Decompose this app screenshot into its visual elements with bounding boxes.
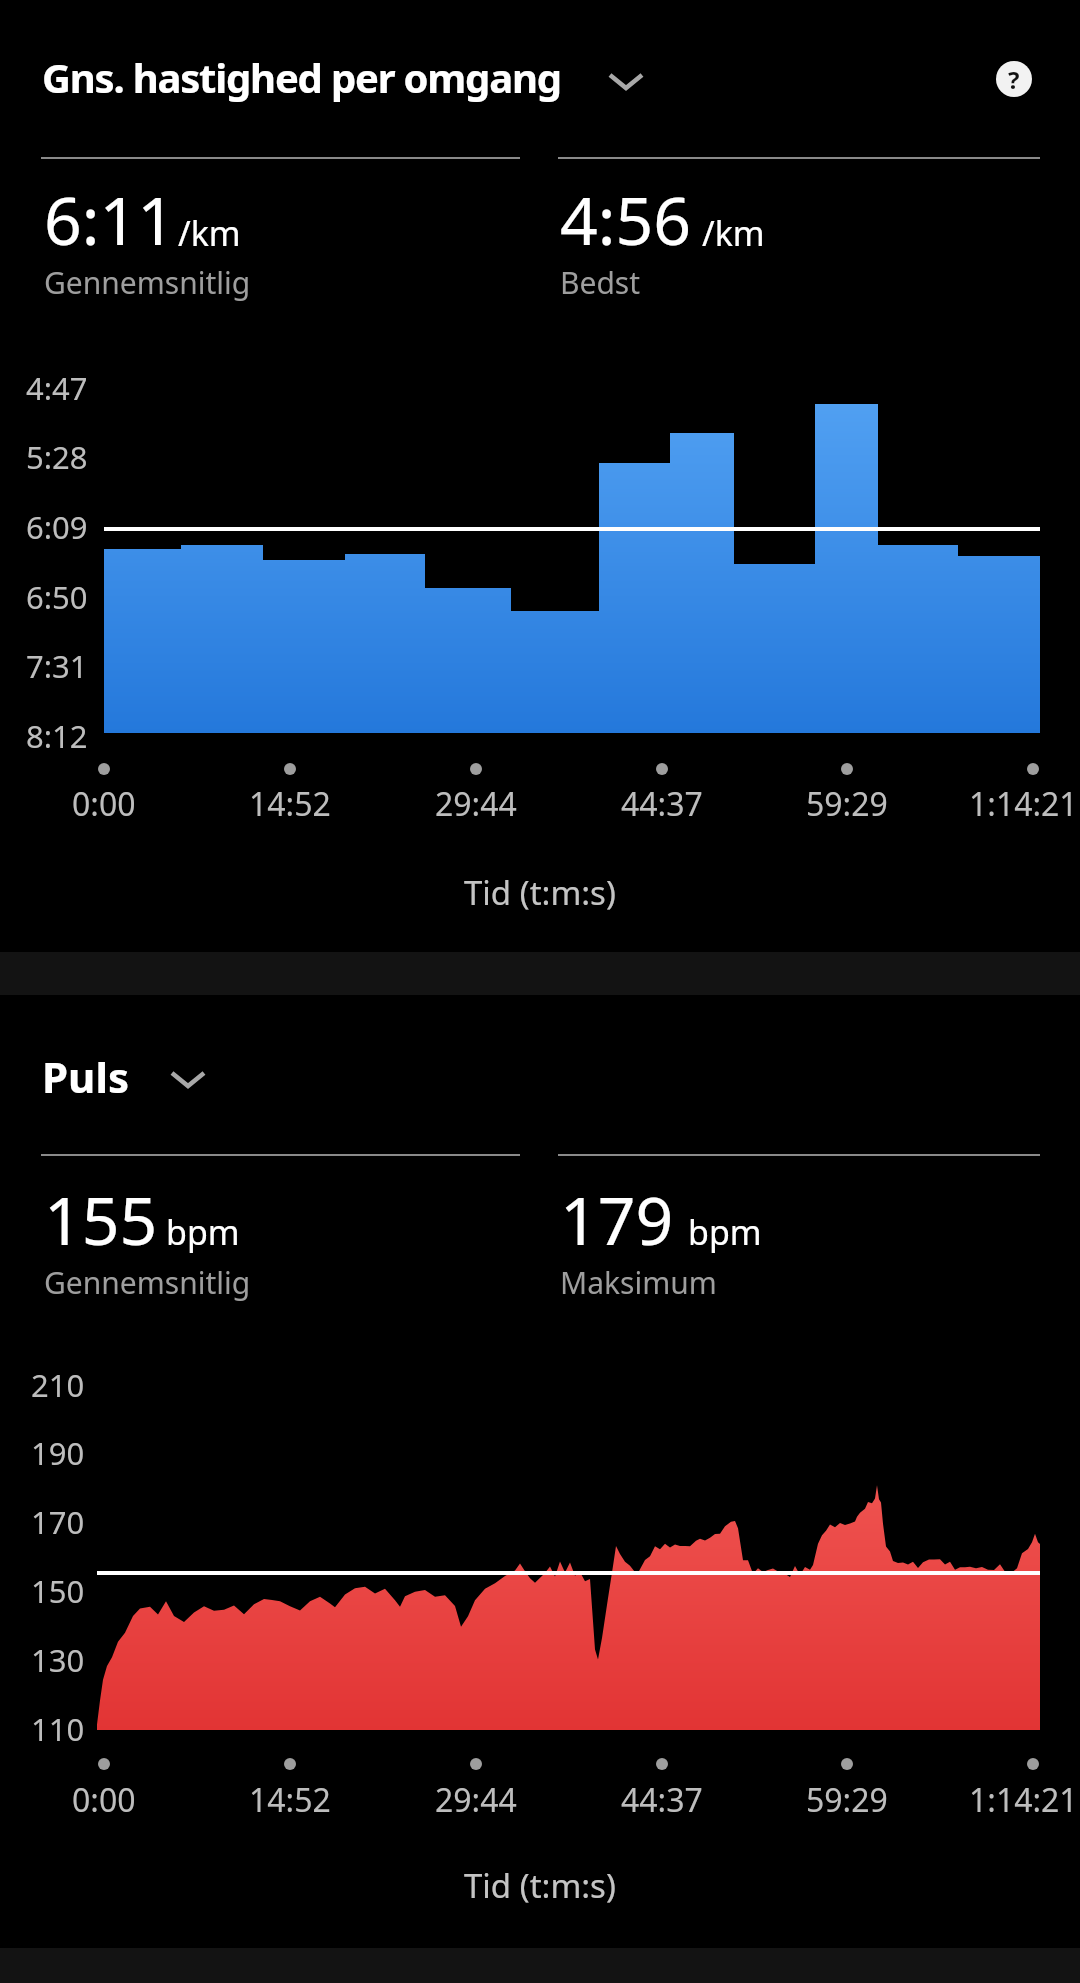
- staticText: Gennemsnitlig: [44, 1262, 251, 1303]
- staticText: Gns. hastighed per omgang: [42, 50, 561, 104]
- staticText: 0:00: [72, 782, 136, 826]
- staticText: 29:44: [435, 1778, 517, 1822]
- staticText: Maksimum: [560, 1262, 717, 1303]
- staticText: Gennemsnitlig: [44, 262, 251, 303]
- staticText: 0:00: [72, 1778, 136, 1822]
- button[interactable]: Puls: [42, 1048, 129, 1105]
- staticText: 6:50: [26, 576, 88, 618]
- staticText: 110: [31, 1708, 85, 1750]
- staticText: 29:44: [435, 782, 517, 826]
- staticText: ?: [1008, 63, 1020, 96]
- staticText: /km: [702, 210, 765, 256]
- staticText: bpm: [166, 1209, 240, 1255]
- staticText: Bedst: [560, 262, 641, 303]
- staticText: 179: [560, 1174, 674, 1264]
- staticText: Puls: [42, 1048, 129, 1105]
- staticText: 4:56: [560, 174, 691, 264]
- staticText: 170: [31, 1501, 85, 1543]
- staticText: 190: [31, 1432, 85, 1474]
- staticText: 150: [31, 1570, 85, 1612]
- staticText: 44:37: [621, 782, 703, 826]
- staticText: 210: [31, 1364, 85, 1406]
- staticText: 6:11: [44, 174, 175, 264]
- staticText: 1:14:21: [969, 782, 1078, 826]
- button[interactable]: Gns. hastighed per omgang: [42, 50, 561, 104]
- staticText: 5:28: [26, 436, 88, 478]
- staticText: 7:31: [26, 645, 88, 687]
- staticText: 8:12: [26, 715, 88, 757]
- staticText: 14:52: [249, 782, 331, 826]
- staticText: Tid (t:m:s): [464, 870, 616, 915]
- staticText: 14:52: [249, 1778, 331, 1822]
- staticText: 59:29: [806, 782, 888, 826]
- staticText: 6:09: [26, 506, 88, 548]
- staticText: bpm: [688, 1209, 762, 1255]
- staticText: Tid (t:m:s): [464, 1863, 616, 1908]
- staticText: 130: [31, 1639, 85, 1681]
- staticText: 59:29: [806, 1778, 888, 1822]
- staticText: 4:47: [26, 367, 88, 409]
- staticText: 155: [44, 1174, 158, 1264]
- staticText: 44:37: [621, 1778, 703, 1822]
- staticText: 1:14:21: [969, 1778, 1078, 1822]
- button[interactable]: ?: [996, 61, 1032, 97]
- staticText: /km: [178, 210, 241, 256]
